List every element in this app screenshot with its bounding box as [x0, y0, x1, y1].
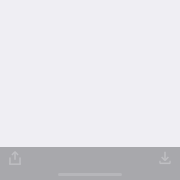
- button[interactable]: Download: [155, 148, 175, 168]
- button[interactable]: Share: [5, 148, 25, 168]
